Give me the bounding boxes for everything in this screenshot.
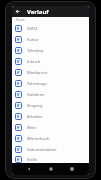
button[interactable]: Inbuch (12, 56, 89, 67)
button[interactable]: Marktpreis (12, 67, 89, 78)
staticText: Kultur (27, 37, 39, 42)
button[interactable]: Arbeitet (12, 111, 89, 122)
button[interactable]: Wörterbuch (12, 133, 89, 144)
staticText: Teleskop (27, 48, 44, 53)
button[interactable]: Kultur (12, 34, 89, 45)
staticText: Wörterbuch (27, 136, 50, 141)
staticText: DVD2 (27, 26, 38, 31)
button[interactable]: Home (46, 164, 56, 174)
button[interactable]: Gefahren (12, 89, 89, 100)
button[interactable]: Recent apps (67, 164, 77, 174)
staticText: Arbeitet (27, 114, 43, 119)
button[interactable]: Wort (12, 122, 89, 133)
button[interactable]: Fahrzeuge (12, 78, 89, 89)
staticText: Stelle (27, 157, 38, 162)
staticText: Marktpreis (27, 70, 48, 75)
button[interactable]: Stelle (12, 155, 89, 163)
button[interactable]: Dokumentation (12, 144, 89, 155)
staticText: Verlauf (27, 8, 49, 16)
button[interactable]: Back (12, 6, 23, 17)
staticText: Fahrzeuge (27, 81, 47, 86)
staticText: Inbuch (27, 59, 41, 64)
staticText: Eingang (27, 103, 43, 108)
button[interactable]: Back (24, 164, 34, 174)
staticText: Heute (16, 18, 25, 22)
staticText: Gefahren (27, 92, 45, 97)
staticText: Wort (27, 125, 37, 130)
button[interactable]: Eingang (12, 100, 89, 111)
button[interactable]: Teleskop (12, 45, 89, 56)
staticText: Dokumentation (27, 147, 57, 152)
button[interactable]: DVD2 (12, 23, 89, 34)
